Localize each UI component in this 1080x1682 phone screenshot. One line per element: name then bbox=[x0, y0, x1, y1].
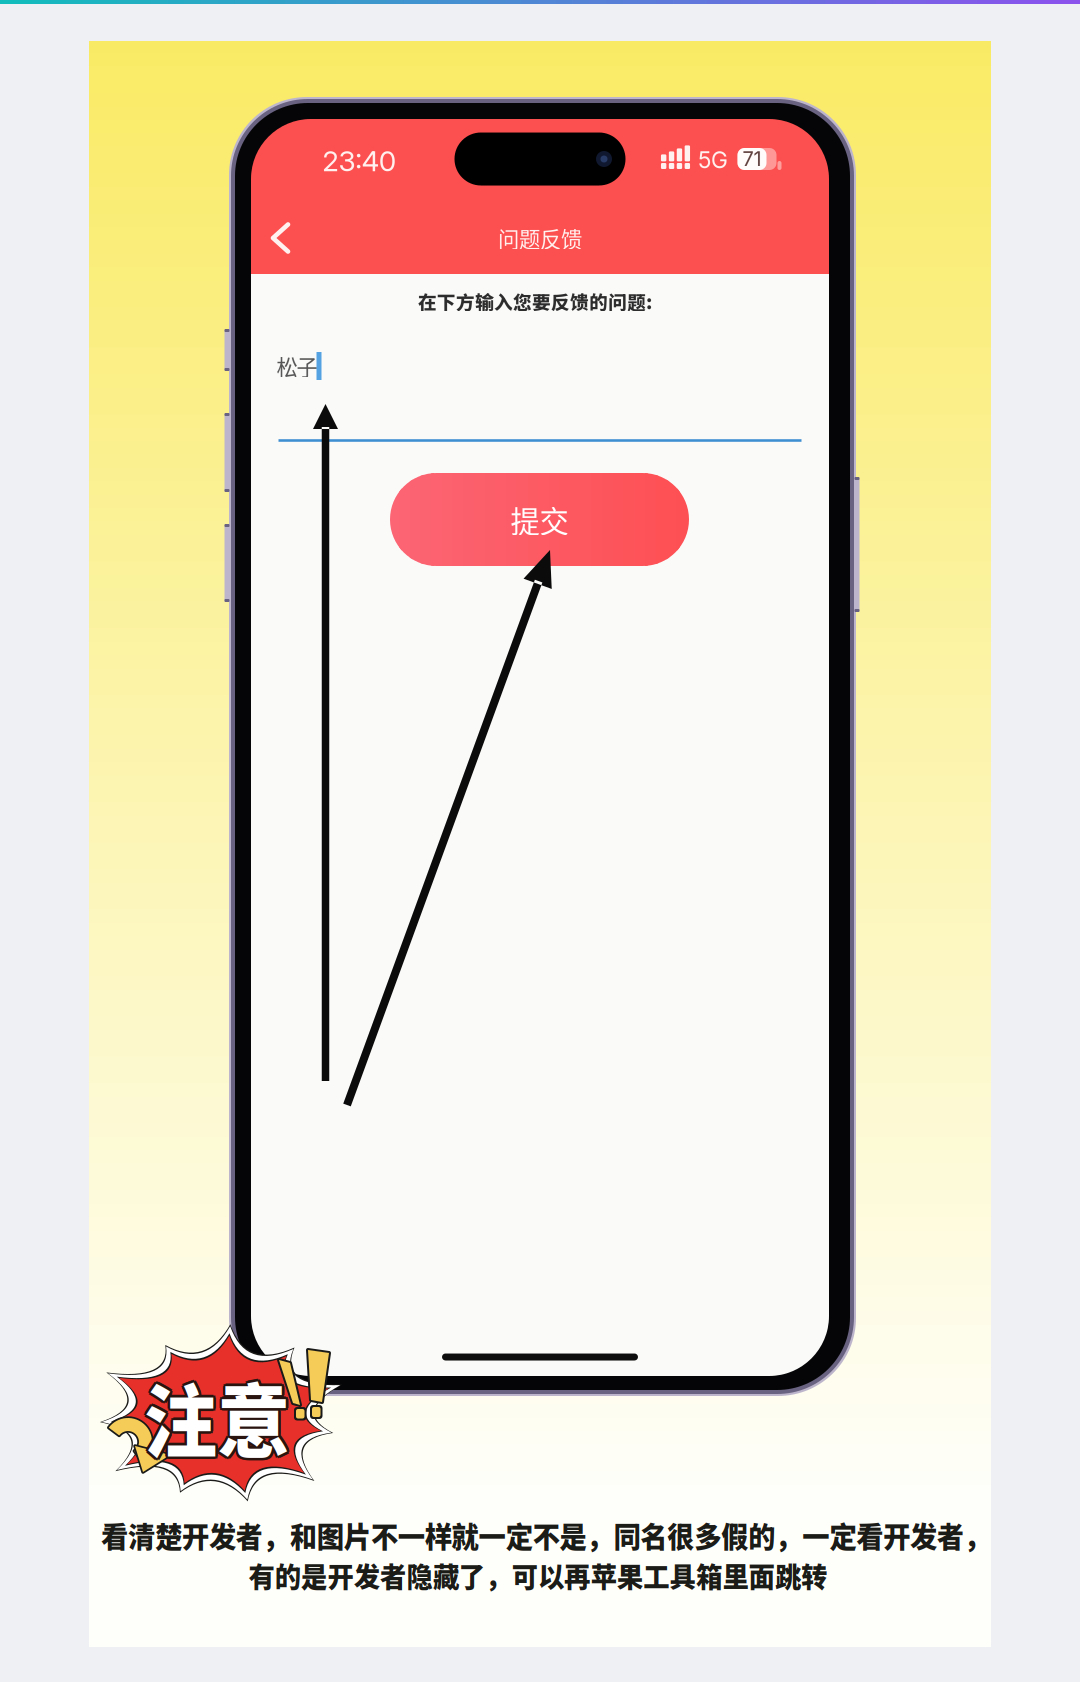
staticText: 提交 bbox=[510, 498, 568, 541]
staticText: 松子 bbox=[276, 351, 317, 381]
staticText: 注意 bbox=[137, 1355, 297, 1471]
staticText: 注意 bbox=[135, 1356, 295, 1472]
staticText: 注意 bbox=[137, 1361, 297, 1476]
staticText: 有的是开发者隐藏了，可以再苹果工具箱里面跳转 bbox=[230, 1555, 846, 1595]
staticText: 注意 bbox=[140, 1358, 300, 1474]
staticText: 注意 bbox=[137, 1358, 297, 1474]
button[interactable]: 提交 bbox=[390, 473, 689, 566]
staticText: 注意 bbox=[135, 1360, 295, 1476]
button[interactable]: 返回 bbox=[251, 209, 309, 267]
staticText: 71 bbox=[742, 147, 761, 171]
staticText: 注意 bbox=[139, 1360, 299, 1476]
staticText: 5G bbox=[698, 146, 728, 174]
staticText: 在下方输入您要反馈的问题: bbox=[418, 287, 652, 314]
staticText: 注意 bbox=[139, 1356, 299, 1472]
staticText: 23:40 bbox=[322, 144, 396, 178]
staticText: 注意 bbox=[134, 1358, 294, 1474]
staticText: 看清楚开发者，和图片不一样就一定不是，同名很多假的，一定看开发者， bbox=[67, 1514, 1024, 1556]
staticText: 问题反馈 bbox=[498, 223, 582, 253]
